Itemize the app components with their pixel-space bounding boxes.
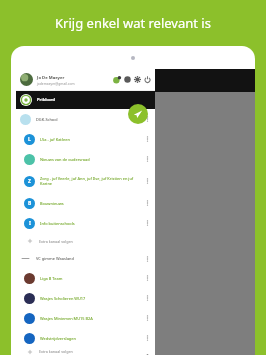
- button[interactable]: Wasjes Scholieren WU17: [16, 288, 155, 308]
- staticText: jodemaeyer@gmail.com: [37, 81, 75, 85]
- button[interactable]: DGK-School: [16, 109, 155, 129]
- other: More options: [144, 334, 151, 342]
- button[interactable]: Wasjes Miniemen MU15 B2A: [16, 308, 155, 328]
- staticText: DGK-School: [36, 117, 141, 122]
- button[interactable]: VC gimme Waasland: [16, 249, 155, 268]
- button[interactable]: Extra kanaal volgen: [16, 233, 155, 249]
- staticText: B: [28, 200, 32, 207]
- button[interactable]: Jo De Maeyer: [16, 69, 155, 90]
- other: More options: [144, 115, 151, 123]
- button[interactable]: B: [16, 193, 155, 213]
- other: Notifications: [113, 76, 121, 84]
- button[interactable]: Prikbord: [16, 91, 155, 109]
- staticText: L: [28, 136, 31, 143]
- other: More options: [144, 255, 151, 263]
- button[interactable]: Liga B Team: [16, 268, 155, 288]
- button[interactable]: Nieuws van de oudersraad: [16, 149, 155, 169]
- staticText: Extra kanaal volgen: [39, 349, 73, 354]
- staticText: Krijg enkel wat relevant is: [55, 14, 211, 32]
- other: Log out: [144, 76, 151, 83]
- staticText: Liga B Team: [40, 276, 141, 281]
- other: More options: [144, 219, 151, 227]
- other: More options: [144, 314, 151, 322]
- other: More options: [144, 135, 151, 143]
- other: More options: [144, 155, 151, 163]
- staticText: Prikbord: [37, 97, 56, 103]
- staticText: Extra kanaal volgen: [39, 239, 73, 244]
- staticText: Zorg - juf Veerle, juf Ann, juf Ilse, ju…: [40, 176, 141, 186]
- staticText: Info buitenschools: [40, 221, 141, 226]
- other: More options: [144, 199, 151, 207]
- staticText: VC gimme Waasland: [36, 256, 144, 261]
- button[interactable]: L: [16, 129, 155, 149]
- staticText: Nieuws van de oudersraad: [40, 157, 141, 162]
- other: Help: [124, 76, 131, 83]
- other: Settings: [134, 76, 141, 83]
- staticText: L5a - juf Katleen: [40, 137, 141, 142]
- button[interactable]: Extra kanaal volgen: [16, 348, 155, 355]
- other: More options: [144, 274, 151, 282]
- staticText: Wedstrijdverslagen: [40, 336, 141, 341]
- button[interactable]: Z: [16, 169, 155, 193]
- staticText: Jo De Maeyer: [37, 75, 65, 81]
- other: More options: [144, 294, 151, 302]
- staticText: Z: [28, 178, 31, 185]
- staticText: Wasjes Scholieren WU17: [40, 296, 141, 301]
- staticText: I: [29, 220, 31, 227]
- button[interactable]: I: [16, 213, 155, 233]
- staticText: Bouwnieuws: [40, 201, 141, 206]
- button[interactable]: Wedstrijdverslagen: [16, 328, 155, 348]
- other: More options: [144, 177, 151, 185]
- button[interactable]: New message: [128, 104, 148, 124]
- staticText: Wasjes Miniemen MU15 B2A: [40, 316, 141, 321]
